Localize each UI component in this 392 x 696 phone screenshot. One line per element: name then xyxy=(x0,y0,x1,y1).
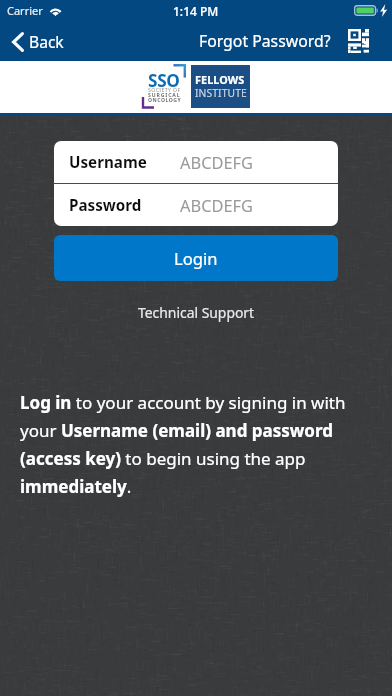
staticText: SURGICAL xyxy=(148,92,181,99)
button[interactable]: Login xyxy=(54,235,338,281)
staticText: Technical Support xyxy=(138,303,255,322)
staticText: FELLOWS xyxy=(195,72,245,87)
staticText: INSTITUTE xyxy=(195,86,247,100)
staticText: ABCDEFG xyxy=(180,194,254,216)
staticText: 1:14 PM xyxy=(173,3,219,19)
button[interactable]: Username xyxy=(54,141,338,183)
staticText: Login xyxy=(174,247,218,270)
button[interactable]: Scan QR code xyxy=(342,26,375,56)
staticText: SSO xyxy=(148,69,180,92)
staticText: Password xyxy=(69,195,142,216)
staticText: ONCOLOGY xyxy=(148,97,182,104)
button[interactable]: Forgot Password? xyxy=(196,23,334,59)
staticText: ABCDEFG xyxy=(180,151,254,173)
button[interactable]: Technical Support xyxy=(0,300,392,325)
staticText: SOCIETY OF xyxy=(148,87,181,94)
button[interactable]: Back xyxy=(0,27,74,56)
staticText: Log in to your account by signing in wit… xyxy=(20,391,378,498)
staticText: Back xyxy=(29,31,64,52)
staticText: Username xyxy=(69,152,147,173)
button[interactable]: Password xyxy=(54,184,338,226)
staticText: Forgot Password? xyxy=(199,30,331,52)
staticText: Carrier xyxy=(7,3,43,18)
